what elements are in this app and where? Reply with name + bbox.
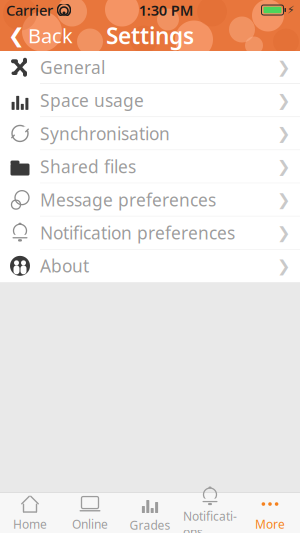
button[interactable]: Notification preferences [0,216,300,250]
button[interactable]: Grades [120,493,180,533]
staticText: Space usage [40,89,144,112]
staticText: Grades [129,517,170,533]
staticText: Message preferences [40,188,216,211]
staticText: Shared files [40,155,136,178]
staticText: About [40,254,89,277]
staticText: More [255,516,285,532]
staticText: ❯ [277,124,290,143]
staticText: Home [13,516,47,532]
staticText: ❯ [277,91,290,109]
staticText: ❮ [8,24,25,47]
staticText: ❯ [277,58,290,76]
staticText: Back [28,22,73,49]
staticText: ❯ [277,257,290,275]
button[interactable]: Space usage [0,84,300,117]
button[interactable]: Synchronisation [0,117,300,150]
staticText: ⚡︎ [287,4,294,16]
staticText: Notifications [183,508,237,533]
button[interactable]: Notifications [180,493,240,533]
staticText: Carrier [6,0,53,20]
staticText: ❯ [277,157,290,176]
button[interactable]: More [240,493,300,533]
staticText: General [40,56,105,79]
button[interactable]: Message preferences [0,183,300,216]
button[interactable]: Home [0,493,60,533]
staticText: Online [72,516,108,532]
button[interactable]: Online [60,493,120,533]
staticText: ❯ [277,224,290,242]
staticText: Notification preferences [40,221,235,244]
staticText: Synchronisation [40,122,170,145]
button[interactable]: About [0,250,300,283]
button[interactable]: ❮ [0,20,81,51]
button[interactable]: General [0,51,300,84]
staticText: ❯ [277,191,290,209]
staticText: Settings [106,20,194,50]
button[interactable]: Shared files [0,150,300,183]
staticText: 1:30 PM [139,0,194,20]
